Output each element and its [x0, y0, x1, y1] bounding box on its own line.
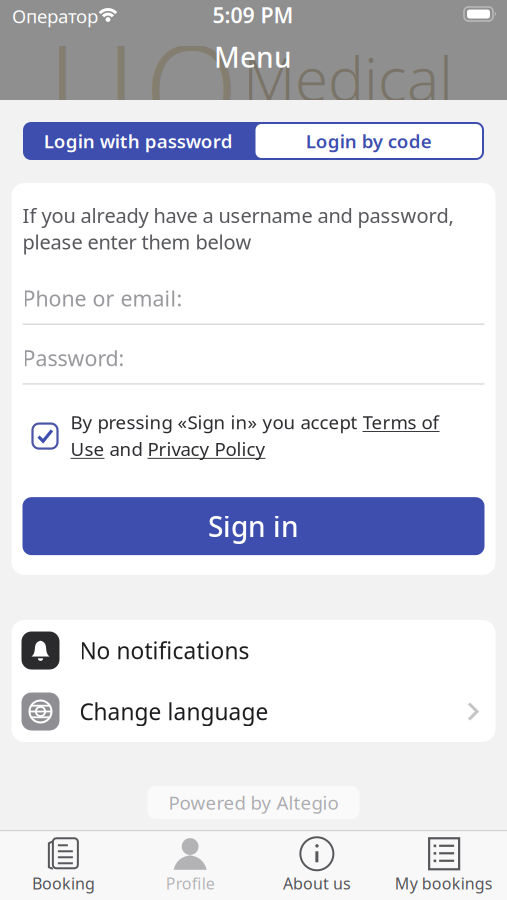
staticText: Оператор	[12, 4, 98, 28]
button[interactable]: About us	[253, 836, 380, 894]
button[interactable]: Accept terms	[32, 424, 57, 449]
button[interactable]: Sign in	[22, 497, 484, 555]
button[interactable]: My bookings	[380, 836, 507, 894]
staticText: Login with password	[44, 129, 233, 153]
staticText: Booking	[32, 873, 95, 894]
staticText: Powered by Altegio	[168, 790, 338, 815]
button[interactable]: Change language	[11, 681, 495, 742]
staticText: If you already have a username and passw…	[22, 202, 453, 229]
staticText: Medical	[243, 38, 453, 118]
button[interactable]: Profile	[127, 836, 254, 894]
staticText: 5:09 PM	[212, 1, 293, 29]
button[interactable]: Booking	[0, 836, 127, 894]
staticText: Sign in	[208, 508, 299, 545]
button[interactable]: Login with password	[23, 122, 253, 160]
staticText: Profile	[166, 873, 215, 894]
staticText: About us	[283, 873, 351, 894]
staticText: UO	[47, 6, 238, 168]
button[interactable]: Login by code	[255, 124, 482, 158]
staticText: Password:	[22, 344, 124, 372]
staticText: No notifications	[79, 635, 249, 665]
staticText: By pressing «Sign in» you accept Terms o…	[70, 410, 438, 434]
staticText: My bookings	[395, 873, 493, 894]
staticText: Phone or email:	[22, 284, 182, 312]
staticText: Login by code	[306, 129, 432, 153]
staticText: Change language	[79, 696, 268, 726]
staticText: please enter them below	[22, 229, 251, 255]
button[interactable]: No notifications	[11, 620, 495, 681]
staticText: Use and Privacy Policy	[70, 436, 265, 461]
staticText: Menu	[214, 38, 292, 76]
